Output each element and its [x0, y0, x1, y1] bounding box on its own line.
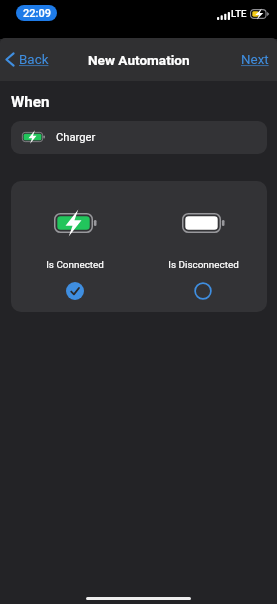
button[interactable]: Is Disconnected: [139, 181, 267, 312]
staticText: When: [11, 93, 50, 111]
staticText: 22:09: [23, 7, 51, 20]
button[interactable]: Charger: [11, 121, 267, 154]
button[interactable]: Back: [0, 51, 55, 68]
staticText: Is Connected: [46, 259, 104, 271]
button[interactable]: Next: [235, 52, 277, 68]
staticText: Next: [241, 52, 269, 68]
other: Is Connected selected: [66, 282, 84, 300]
staticText: Is Disconnected: [168, 259, 239, 271]
staticText: Back: [19, 52, 49, 68]
button[interactable]: Is Connected: [11, 181, 139, 312]
other: Is Disconnected: [194, 282, 212, 300]
staticText: LTE: [231, 8, 247, 19]
staticText: Charger: [56, 131, 96, 144]
staticText: New Automation: [88, 52, 190, 68]
